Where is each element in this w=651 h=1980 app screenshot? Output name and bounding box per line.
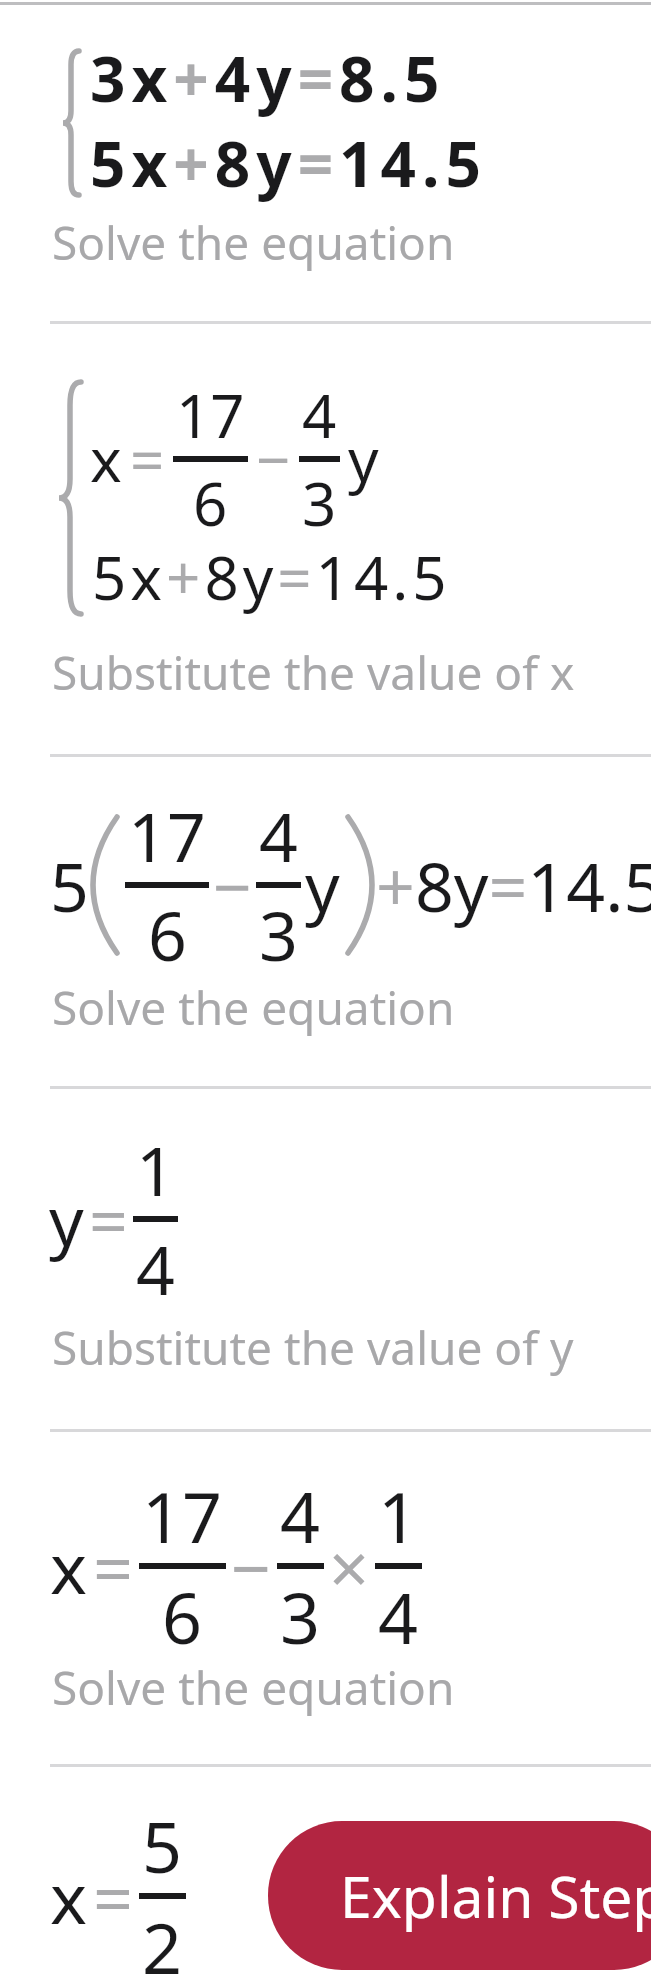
staticText: 17 [176,374,245,456]
staticText: 5x+8y=14.5 [92,536,451,618]
staticText: y [305,839,340,932]
staticText: Substitute the value of y [52,1316,574,1379]
button[interactable]: Explain Steps [268,1821,651,1970]
staticText: y [49,1173,84,1266]
staticText: = [89,1173,128,1266]
staticText: = [93,1849,134,1944]
staticText: 4 [136,1222,175,1315]
staticText: Substitute the value of x [52,641,575,704]
staticText: x [90,418,122,500]
staticText: 6 [162,1569,203,1664]
staticText: 3 [302,462,337,544]
staticText: 4 [259,789,298,882]
staticText: x [50,1519,88,1614]
staticText: = [130,418,165,500]
staticText: 1 [136,1123,175,1216]
staticText: 4 [378,1569,419,1664]
staticText: Explain Steps [340,1857,651,1935]
staticText: 3x+4y=8.5 [90,36,446,120]
staticText: Solve the equation [52,1656,455,1719]
staticText: 2 [142,1899,183,1980]
staticText: Solve the equation [52,976,455,1039]
staticText: 3 [280,1569,321,1664]
staticText: +8y=14.5 [376,839,651,932]
staticText: × [329,1519,370,1614]
staticText: x [50,1849,88,1944]
staticText: Solve the equation [52,211,455,274]
staticText: 6 [148,888,187,981]
staticText: − [256,418,291,500]
staticText: − [213,839,252,932]
staticText: y [348,418,379,500]
staticText: 5x+8y=14.5 [90,121,487,205]
staticText: 4 [302,374,337,456]
staticText: 6 [193,462,228,544]
staticText: 5 [142,1798,183,1893]
staticText: 17 [128,789,206,882]
staticText: − [231,1519,272,1614]
staticText: 5 [50,839,89,932]
staticText: = [93,1519,134,1614]
staticText: 17 [142,1468,223,1563]
staticText: 1 [378,1468,419,1563]
staticText: 4 [280,1468,321,1563]
staticText: 3 [259,888,298,981]
